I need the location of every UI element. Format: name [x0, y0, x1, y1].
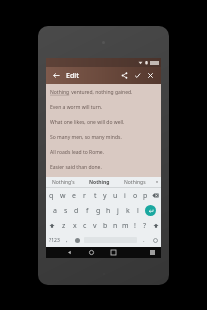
- button[interactable]: p: [140, 188, 150, 203]
- button[interactable]: y: [100, 188, 110, 203]
- button[interactable]: Share: [118, 69, 131, 82]
- staticText: a: [53, 206, 57, 216]
- button[interactable]: s: [60, 203, 71, 218]
- staticText: !: [134, 221, 136, 231]
- button[interactable]: Back: [50, 69, 63, 82]
- staticText: u: [113, 191, 118, 201]
- staticText: j: [117, 206, 119, 216]
- button[interactable]: Recents: [102, 247, 124, 258]
- staticText: m: [122, 221, 129, 231]
- button[interactable]: l: [133, 203, 143, 218]
- button[interactable]: w: [57, 188, 68, 203]
- staticText: .: [143, 236, 145, 244]
- staticText: Edit: [66, 71, 79, 81]
- button[interactable]: Home: [80, 247, 102, 258]
- button[interactable]: r: [79, 188, 90, 203]
- staticText: ?123: [49, 237, 60, 244]
- button[interactable]: k: [123, 203, 133, 218]
- button[interactable]: Shift: [46, 218, 58, 233]
- button[interactable]: j: [113, 203, 123, 218]
- staticText: h: [106, 206, 111, 216]
- staticText: So many men, so many minds.: [50, 134, 122, 141]
- button[interactable]: g: [93, 203, 103, 218]
- button[interactable]: t: [90, 188, 100, 203]
- button[interactable]: Emoji: [149, 233, 161, 247]
- staticText: l: [137, 206, 139, 216]
- button[interactable]: Delete: [150, 188, 161, 203]
- button[interactable]: !: [130, 218, 140, 233]
- staticText: s: [64, 206, 68, 216]
- staticText: n: [113, 221, 118, 231]
- staticText: c: [83, 221, 87, 231]
- staticText: Nothing: [89, 179, 110, 186]
- staticText: Even a worm will turn.: [50, 104, 103, 111]
- staticText: ?: [143, 221, 147, 231]
- staticText: b: [103, 221, 108, 231]
- staticText: d: [74, 206, 79, 216]
- button[interactable]: .: [139, 233, 149, 247]
- staticText: k: [126, 206, 130, 216]
- button[interactable]: Shift: [150, 218, 161, 233]
- staticText: v: [93, 221, 97, 231]
- staticText: f: [86, 206, 89, 216]
- button[interactable]: Nothings: [117, 177, 153, 187]
- button[interactable]: x: [69, 218, 80, 233]
- button[interactable]: f: [82, 203, 93, 218]
- button[interactable]: o: [130, 188, 140, 203]
- staticText: Nothing: [50, 89, 70, 96]
- staticText: Nothing's: [52, 179, 75, 186]
- staticText: Easier said than done.: [50, 164, 102, 171]
- staticText: w: [60, 191, 66, 201]
- staticText: ventured, nothing gained.: [70, 89, 133, 96]
- button[interactable]: Nothing: [46, 84, 161, 177]
- staticText: o: [133, 191, 138, 201]
- button[interactable]: Discard: [144, 69, 157, 82]
- button[interactable]: Save: [131, 69, 144, 82]
- button[interactable]: ?: [140, 218, 150, 233]
- button[interactable]: q: [46, 188, 57, 203]
- button[interactable]: ?123: [46, 233, 62, 247]
- staticText: q: [49, 191, 54, 201]
- staticText: ,: [66, 236, 68, 244]
- button[interactable]: h: [103, 203, 113, 218]
- button[interactable]: Nothing's: [46, 177, 81, 187]
- staticText: e: [72, 191, 76, 201]
- button[interactable]: Back: [58, 247, 80, 258]
- button[interactable]: n: [110, 218, 120, 233]
- staticText: p: [143, 191, 148, 201]
- button[interactable]: Menu: [144, 247, 161, 258]
- staticText: g: [96, 206, 101, 216]
- button[interactable]: More suggestions: [153, 177, 161, 187]
- button[interactable]: v: [90, 218, 100, 233]
- button[interactable]: u: [110, 188, 120, 203]
- button[interactable]: Enter: [143, 203, 158, 218]
- staticText: All roads lead to Rome.: [50, 149, 105, 156]
- button[interactable]: a: [49, 203, 60, 218]
- button[interactable]: ,: [62, 233, 72, 247]
- button[interactable]: z: [58, 218, 69, 233]
- button[interactable]: e: [68, 188, 79, 203]
- staticText: What one likes, one will do well.: [50, 119, 125, 126]
- button[interactable]: m: [120, 218, 130, 233]
- staticText: z: [62, 221, 66, 231]
- staticText: r: [83, 191, 86, 201]
- button[interactable]: i: [120, 188, 130, 203]
- button[interactable]: c: [80, 218, 90, 233]
- button[interactable]: b: [100, 218, 110, 233]
- staticText: x: [73, 221, 77, 231]
- staticText: Nothings: [124, 179, 146, 186]
- staticText: t: [94, 191, 97, 201]
- staticText: y: [103, 191, 107, 201]
- staticText: i: [124, 191, 126, 201]
- button[interactable]: d: [71, 203, 82, 218]
- button[interactable]: Voice input: [72, 233, 82, 247]
- button[interactable]: Nothing: [81, 177, 117, 187]
